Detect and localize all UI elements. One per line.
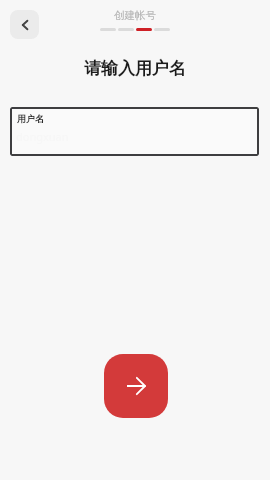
button[interactable]: Back <box>10 10 39 39</box>
staticText: 用户名 <box>17 113 44 124</box>
staticText: 请输入用户名 <box>0 58 270 79</box>
button[interactable]: 用户名 input field <box>10 107 259 156</box>
button[interactable]: Continue <box>104 354 168 418</box>
staticText: 创建帐号 <box>114 9 156 22</box>
